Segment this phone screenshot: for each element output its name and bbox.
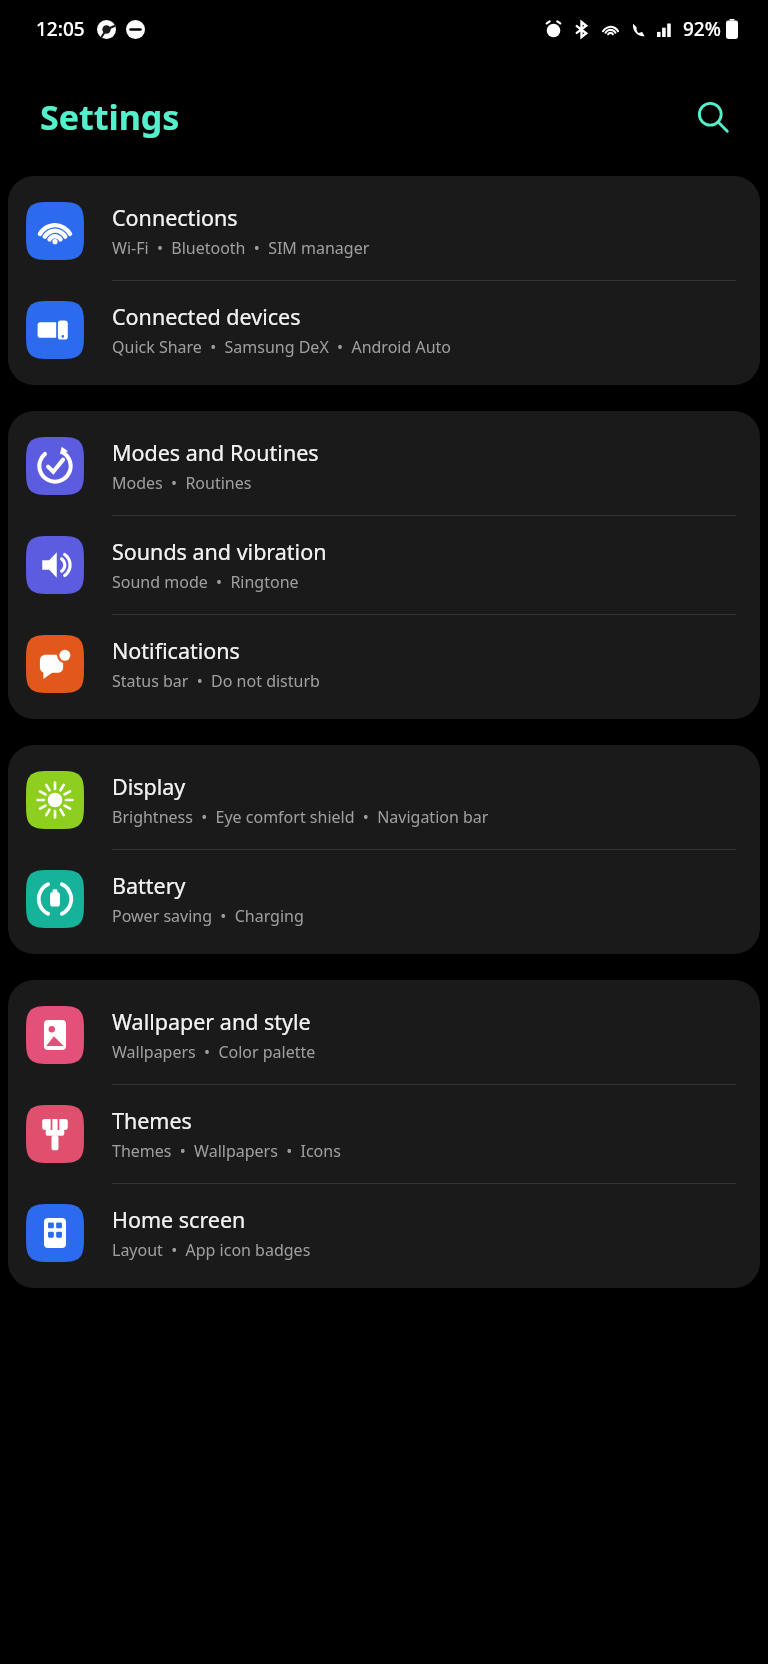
staticText: Home screen [112,1205,246,1234]
button[interactable]: Connected devices [8,281,760,379]
button[interactable]: Themes [8,1085,760,1183]
button[interactable]: Search [686,90,740,144]
staticText: 12:05 [36,16,85,42]
button[interactable]: Display [8,751,760,849]
staticText: Themes [112,1106,192,1135]
staticText: Wi-Fi • Bluetooth • SIM manager [112,237,370,259]
staticText: Battery [112,871,186,900]
staticText: Modes • Routines [112,472,252,494]
button[interactable]: Connections [8,182,760,280]
staticText: Sound mode • Ringtone [112,571,299,593]
staticText: Modes and Routines [112,438,319,467]
staticText: Wallpaper and style [112,1007,311,1036]
staticText: Sounds and vibration [112,537,327,566]
button[interactable]: Battery [8,850,760,948]
staticText: Notifications [112,636,240,665]
staticText: Status bar • Do not disturb [112,670,320,692]
staticText: Layout • App icon badges [112,1239,311,1261]
staticText: Wallpapers • Color palette [112,1041,316,1063]
button[interactable]: Sounds and vibration [8,516,760,614]
staticText: 92% [683,16,721,42]
staticText: Power saving • Charging [112,905,304,927]
button[interactable]: Modes and Routines [8,417,760,515]
staticText: Display [112,772,186,801]
button[interactable]: Home screen [8,1184,760,1282]
staticText: Brightness • Eye comfort shield • Naviga… [112,806,489,828]
staticText: Quick Share • Samsung DeX • Android Auto [112,336,452,358]
button[interactable]: Wallpaper and style [8,986,760,1084]
staticText: Themes • Wallpapers • Icons [112,1140,341,1162]
button[interactable]: Notifications [8,615,760,713]
staticText: Settings [40,94,180,140]
staticText: Connected devices [112,302,301,331]
staticText: Connections [112,203,238,232]
